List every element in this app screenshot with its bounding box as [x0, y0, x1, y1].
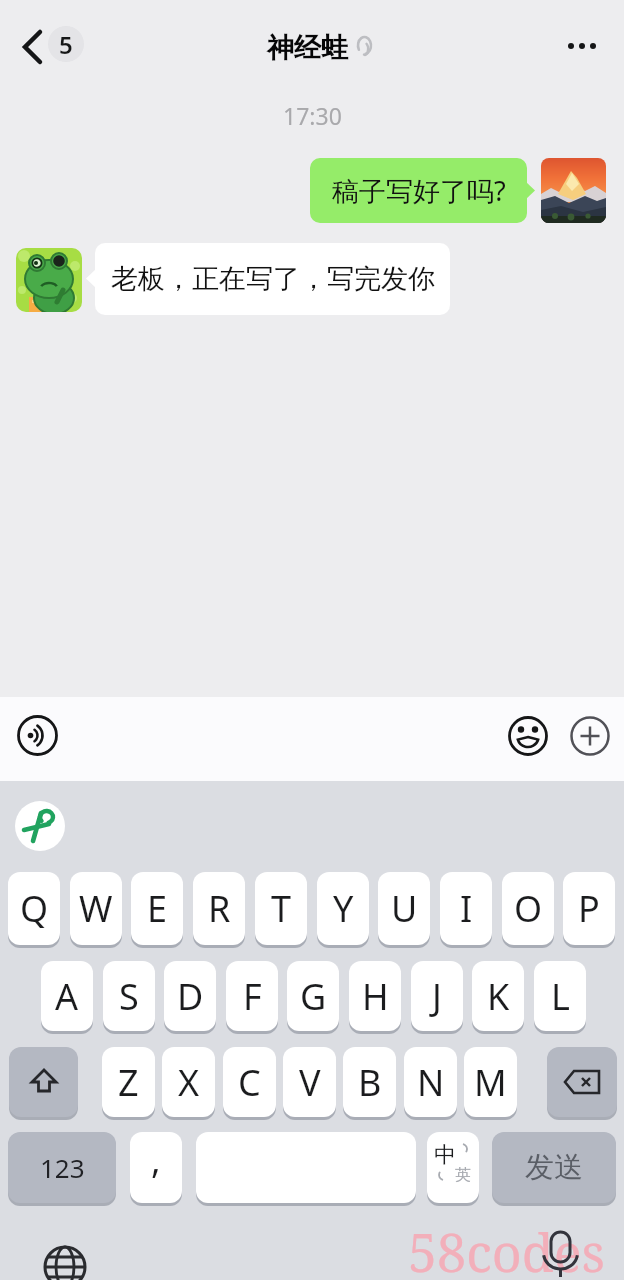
staticText: 老板，正在写了，写完发你: [111, 262, 435, 296]
button[interactable]: G: [287, 961, 339, 1031]
staticText: U: [391, 884, 418, 933]
staticText: K: [487, 972, 510, 1021]
staticText: 123: [40, 1150, 85, 1185]
button[interactable]: [43, 1245, 87, 1280]
button[interactable]: S: [103, 961, 155, 1031]
button[interactable]: E: [131, 872, 183, 945]
staticText: G: [300, 972, 327, 1021]
staticText: I: [460, 884, 473, 933]
staticText: F: [243, 972, 262, 1021]
button[interactable]: H: [349, 961, 401, 1031]
staticText: S: [119, 972, 139, 1021]
staticText: V: [299, 1058, 321, 1107]
staticText: O: [514, 884, 543, 933]
button[interactable]: 稿子写好了吗?: [310, 158, 527, 223]
button[interactable]: [15, 801, 65, 851]
button[interactable]: [508, 716, 548, 756]
staticText: L: [551, 972, 570, 1021]
staticText: W: [79, 884, 113, 933]
staticText: M: [474, 1058, 507, 1107]
button[interactable]: [552, 30, 604, 62]
staticText: Q: [20, 884, 49, 933]
staticText: P: [578, 884, 600, 933]
staticText: 17:30: [283, 100, 342, 131]
button[interactable]: A: [41, 961, 93, 1031]
staticText: X: [178, 1058, 200, 1107]
button[interactable]: V: [283, 1047, 336, 1117]
button[interactable]: [14, 22, 54, 70]
staticText: 稿子写好了吗?: [332, 172, 506, 209]
button[interactable]: Q: [8, 872, 60, 945]
button[interactable]: C: [223, 1047, 276, 1117]
staticText: H: [362, 972, 389, 1021]
staticText: E: [147, 884, 168, 933]
button[interactable]: B: [343, 1047, 396, 1117]
button[interactable]: K: [472, 961, 524, 1031]
staticText: 中: [434, 1141, 456, 1169]
button[interactable]: 中: [427, 1132, 479, 1203]
button[interactable]: 老板，正在写了，写完发你: [95, 243, 450, 315]
staticText: Z: [118, 1058, 139, 1107]
button[interactable]: 5: [48, 26, 84, 62]
button[interactable]: P: [563, 872, 615, 945]
button[interactable]: [570, 716, 610, 756]
button[interactable]: N: [404, 1047, 457, 1117]
button[interactable]: [196, 1132, 416, 1203]
button[interactable]: D: [164, 961, 216, 1031]
button[interactable]: F: [226, 961, 278, 1031]
staticText: Y: [333, 884, 354, 933]
button[interactable]: O: [502, 872, 554, 945]
staticText: J: [432, 972, 442, 1021]
button[interactable]: L: [534, 961, 586, 1031]
button[interactable]: X: [162, 1047, 215, 1117]
staticText: 神经蛙: [267, 31, 348, 65]
staticText: D: [177, 972, 204, 1021]
button[interactable]: [547, 1047, 617, 1117]
staticText: N: [417, 1058, 445, 1107]
staticText: B: [358, 1058, 382, 1107]
button[interactable]: W: [70, 872, 122, 945]
staticText: T: [271, 884, 292, 933]
staticText: A: [55, 972, 79, 1021]
staticText: 发送: [525, 1149, 583, 1186]
staticText: ,: [151, 1135, 161, 1184]
button[interactable]: Y: [317, 872, 369, 945]
button[interactable]: [16, 248, 82, 312]
button[interactable]: [541, 158, 606, 223]
button[interactable]: ,: [130, 1132, 182, 1203]
button[interactable]: M: [464, 1047, 517, 1117]
staticText: 英: [455, 1165, 471, 1185]
button[interactable]: J: [411, 961, 463, 1031]
button[interactable]: U: [378, 872, 430, 945]
staticText: C: [238, 1058, 261, 1107]
button[interactable]: [9, 1047, 78, 1117]
button[interactable]: I: [440, 872, 492, 945]
button[interactable]: [17, 715, 58, 756]
button[interactable]: 发送: [492, 1132, 616, 1203]
staticText: 58codes: [408, 1216, 605, 1280]
button[interactable]: R: [193, 872, 245, 945]
button[interactable]: [540, 1228, 582, 1280]
button[interactable]: T: [255, 872, 307, 945]
button[interactable]: Z: [102, 1047, 155, 1117]
staticText: R: [208, 884, 231, 933]
staticText: 5: [59, 28, 73, 61]
button[interactable]: 123: [8, 1132, 116, 1203]
